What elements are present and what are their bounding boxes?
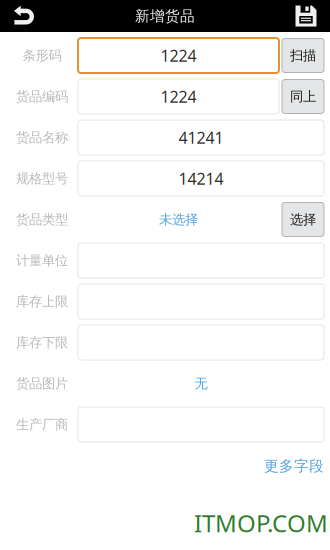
staticText: 41241 xyxy=(178,127,223,148)
staticText: 规格型号 xyxy=(16,170,68,187)
staticText: 库存上限 xyxy=(16,293,68,310)
staticText: 未选择 xyxy=(159,211,198,228)
button[interactable]: 扫描 xyxy=(282,38,324,72)
staticText: 14214 xyxy=(178,168,223,189)
staticText: 库存下限 xyxy=(16,334,68,351)
staticText: 更多字段 xyxy=(264,457,324,475)
button[interactable]: Save xyxy=(282,0,330,32)
staticText: 货品图片 xyxy=(16,375,68,392)
staticText: 扫描 xyxy=(290,47,316,64)
staticText: 货品名称 xyxy=(16,129,68,146)
staticText: 无 xyxy=(194,375,207,392)
button[interactable]: 更多字段 xyxy=(264,457,324,475)
staticText: 新增货品 xyxy=(135,7,195,25)
staticText: 1224 xyxy=(160,45,196,66)
button[interactable]: 无 xyxy=(78,366,324,401)
button[interactable]: Back xyxy=(0,0,48,32)
staticText: 选择 xyxy=(290,211,316,228)
staticText: 条形码 xyxy=(22,47,61,64)
button[interactable]: 未选择 xyxy=(78,202,279,237)
staticText: ITMOP.COM xyxy=(194,507,328,539)
staticText: 生产厂商 xyxy=(16,416,68,433)
staticText: 计量单位 xyxy=(16,252,68,269)
staticText: 货品类型 xyxy=(16,211,68,228)
button[interactable]: 选择 xyxy=(282,202,324,236)
button[interactable]: 同上 xyxy=(282,79,324,113)
staticText: 同上 xyxy=(290,88,316,105)
staticText: 1224 xyxy=(160,86,196,107)
staticText: 货品编码 xyxy=(16,88,68,105)
